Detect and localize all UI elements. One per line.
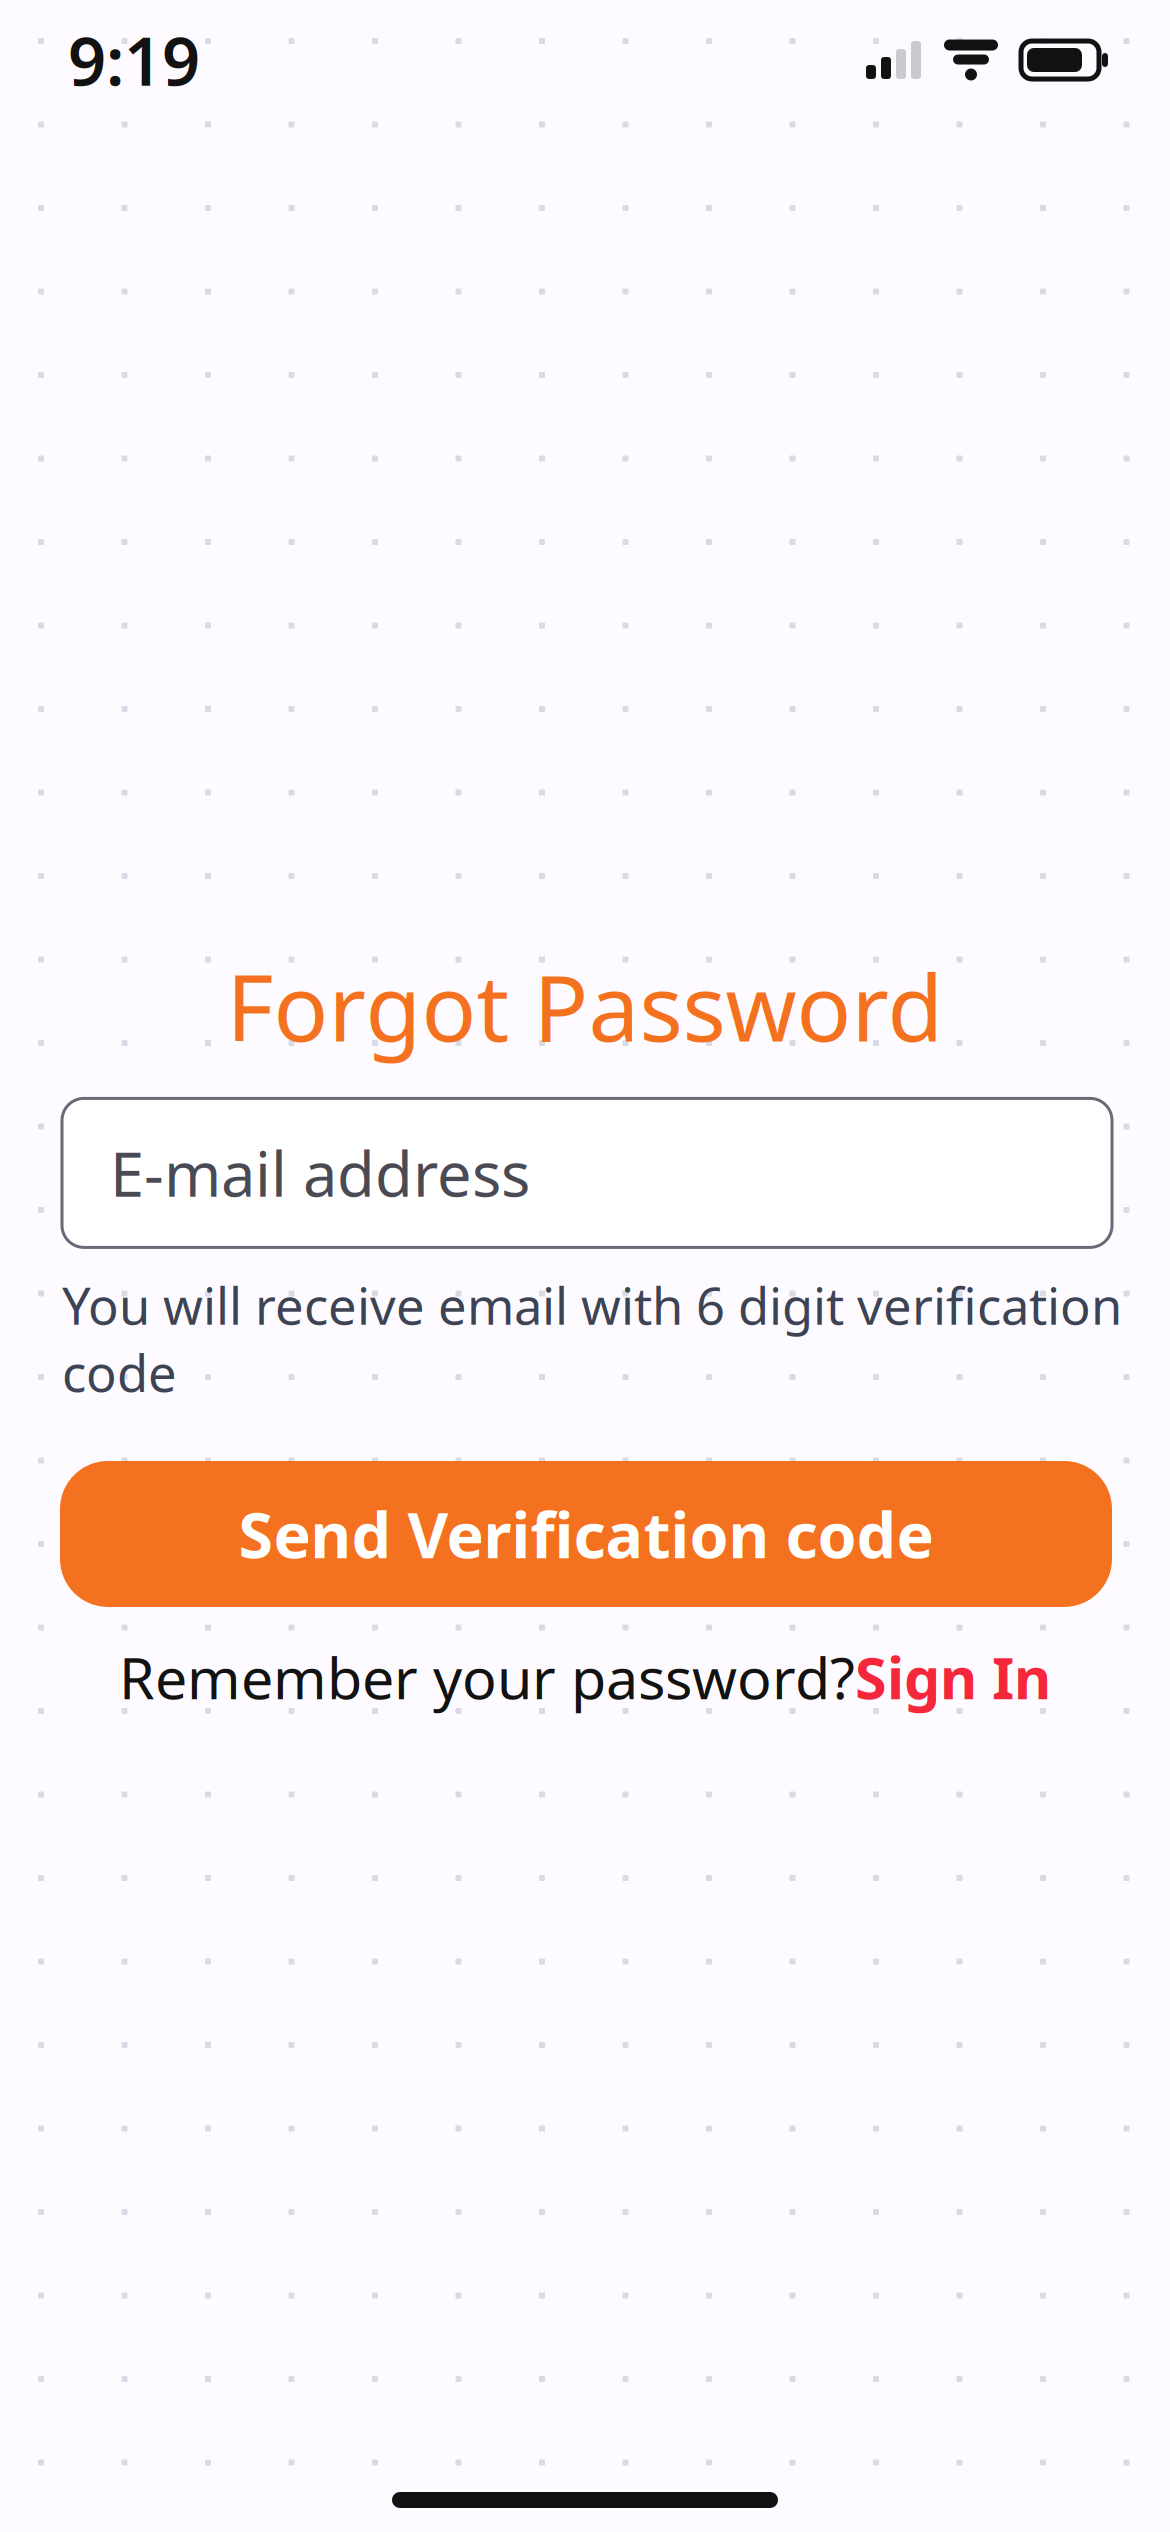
button[interactable]: Send Verification code [60, 1461, 1112, 1607]
staticText: 9:19 [68, 16, 200, 104]
staticText: Send Verification code [238, 1492, 933, 1576]
staticText: Sign In [855, 1639, 1051, 1715]
staticText: E-mail address [110, 1132, 530, 1214]
staticText: You will receive email with 6 digit veri… [62, 1271, 1122, 1406]
staticText: Remember your password? [119, 1639, 855, 1715]
button[interactable]: Sign In [855, 1639, 1051, 1715]
staticText: Forgot Password [226, 946, 943, 1066]
